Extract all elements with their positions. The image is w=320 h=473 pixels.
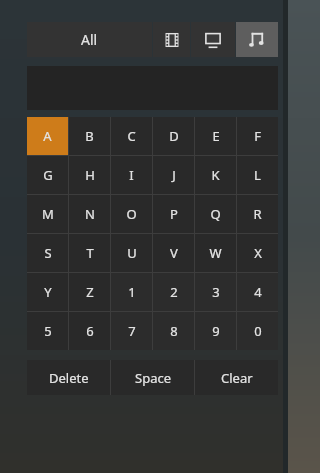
staticText: X — [254, 244, 262, 262]
staticText: Z — [86, 283, 94, 301]
staticText: K — [211, 166, 220, 184]
staticText: O — [126, 205, 137, 223]
staticText: All — [81, 30, 98, 49]
staticText: Clear — [221, 369, 253, 387]
button[interactable]: V — [153, 234, 194, 272]
staticText: D — [169, 127, 179, 145]
staticText: Delete — [49, 369, 89, 387]
staticText: M — [42, 205, 54, 223]
button[interactable]: O — [111, 195, 152, 233]
button[interactable]: 0 — [237, 312, 278, 350]
staticText: T — [86, 244, 94, 262]
button[interactable]: 4 — [237, 273, 278, 311]
staticText: S — [44, 244, 52, 262]
staticText: U — [127, 244, 137, 262]
button[interactable]: S — [27, 234, 68, 272]
button[interactable]: Space — [111, 360, 194, 395]
button[interactable]: Y — [27, 273, 68, 311]
button[interactable]: P — [153, 195, 194, 233]
staticText: E — [212, 127, 220, 145]
staticText: R — [253, 205, 262, 223]
button[interactable]: F — [237, 117, 278, 155]
button[interactable]: 3 — [195, 273, 236, 311]
staticText: N — [85, 205, 95, 223]
staticText: J — [172, 166, 176, 184]
staticText: 4 — [254, 283, 262, 301]
staticText: C — [127, 127, 136, 145]
staticText: Q — [210, 205, 221, 223]
button[interactable]: W — [195, 234, 236, 272]
staticText: 1 — [128, 283, 136, 301]
staticText: 5 — [44, 322, 52, 340]
button[interactable]: D — [153, 117, 194, 155]
button[interactable]: T — [69, 234, 110, 272]
button[interactable]: K — [195, 156, 236, 194]
button[interactable]: R — [237, 195, 278, 233]
button[interactable]: 8 — [153, 312, 194, 350]
button[interactable]: 1 — [111, 273, 152, 311]
staticText: W — [209, 244, 222, 262]
button[interactable]: 2 — [153, 273, 194, 311]
button[interactable]: U — [111, 234, 152, 272]
staticText: V — [170, 244, 178, 262]
button[interactable]: E — [195, 117, 236, 155]
staticText: 8 — [170, 322, 178, 340]
button[interactable]: All — [27, 22, 152, 57]
staticText: G — [43, 166, 53, 184]
button[interactable]: Z — [69, 273, 110, 311]
button[interactable]: Movies — [153, 22, 190, 57]
button[interactable]: TV shows — [191, 22, 235, 57]
button[interactable]: 7 — [111, 312, 152, 350]
button[interactable]: 9 — [195, 312, 236, 350]
staticText: B — [85, 127, 94, 145]
staticText: 7 — [128, 322, 136, 340]
button[interactable]: I — [111, 156, 152, 194]
staticText: 3 — [212, 283, 220, 301]
button[interactable]: H — [69, 156, 110, 194]
staticText: F — [254, 127, 261, 145]
staticText: A — [43, 127, 52, 145]
staticText: 0 — [254, 322, 262, 340]
button[interactable]: J — [153, 156, 194, 194]
button[interactable]: Clear — [195, 360, 278, 395]
staticText: P — [170, 205, 178, 223]
staticText: L — [254, 166, 261, 184]
staticText: 6 — [86, 322, 94, 340]
button[interactable]: Delete — [27, 360, 110, 395]
staticText: Space — [135, 369, 171, 387]
button[interactable]: Music — [236, 22, 278, 57]
button[interactable]: A — [27, 117, 68, 155]
button[interactable]: 6 — [69, 312, 110, 350]
staticText: 2 — [170, 283, 178, 301]
button[interactable]: B — [69, 117, 110, 155]
staticText: Y — [44, 283, 52, 301]
button[interactable]: C — [111, 117, 152, 155]
button[interactable]: M — [27, 195, 68, 233]
staticText: H — [85, 166, 95, 184]
button[interactable]: L — [237, 156, 278, 194]
button[interactable]: X — [237, 234, 278, 272]
staticText: I — [129, 166, 134, 184]
staticText: 9 — [212, 322, 220, 340]
button[interactable]: G — [27, 156, 68, 194]
button[interactable]: 5 — [27, 312, 68, 350]
button[interactable]: Q — [195, 195, 236, 233]
button[interactable]: N — [69, 195, 110, 233]
